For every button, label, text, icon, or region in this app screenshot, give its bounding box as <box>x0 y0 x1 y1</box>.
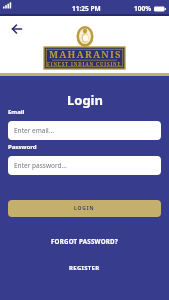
button[interactable]: LOGIN <box>8 200 161 217</box>
staticText: 11:25 PM <box>72 4 101 13</box>
staticText: FINEST INDIAN CUISINE <box>47 61 122 67</box>
button[interactable]: FORGOT PASSWORD? <box>51 237 118 245</box>
staticText: Login <box>67 91 103 109</box>
staticText: Password <box>8 143 37 151</box>
staticText: FORGOT PASSWORD? <box>51 237 118 245</box>
staticText: 100% <box>134 4 152 13</box>
staticText: Enter email... <box>14 126 54 135</box>
staticText: REGISTER <box>69 264 100 272</box>
button[interactable]: Enter password... <box>8 156 161 175</box>
button[interactable] <box>6 18 28 38</box>
staticText: Email <box>8 108 25 116</box>
staticText: Enter password... <box>14 161 67 170</box>
button[interactable]: REGISTER <box>69 264 100 272</box>
staticText: LOGIN <box>74 205 95 212</box>
staticText: MAHARANIS <box>49 48 122 61</box>
button[interactable]: Enter email... <box>8 121 161 140</box>
